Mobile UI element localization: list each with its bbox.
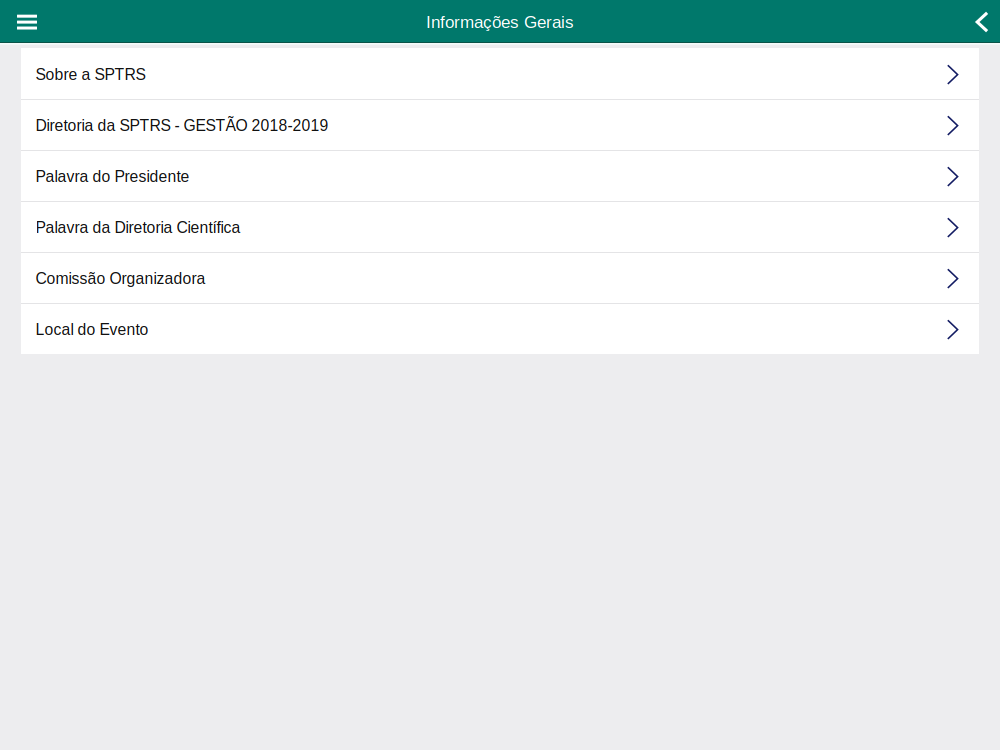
button[interactable]: Sobre a SPTRS [21, 48, 979, 99]
button[interactable]: Diretoria da SPTRS - GESTÃO 2018-2019 [21, 99, 979, 150]
button[interactable]: Back [962, 0, 1000, 42]
staticText: Palavra do Presidente [35, 168, 189, 185]
staticText: Informações Gerais [426, 12, 574, 32]
button[interactable]: Palavra do Presidente [21, 150, 979, 201]
button[interactable]: Local do Evento [21, 303, 979, 354]
staticText: Palavra da Diretoria Científica [35, 219, 240, 236]
staticText: Local do Evento [35, 321, 148, 338]
button[interactable]: Comissão Organizadora [21, 252, 979, 303]
staticText: Sobre a SPTRS [35, 66, 145, 83]
button[interactable]: Menu [6, 0, 48, 42]
staticText: Comissão Organizadora [35, 270, 205, 287]
button[interactable]: Palavra da Diretoria Científica [21, 201, 979, 252]
staticText: Diretoria da SPTRS - GESTÃO 2018-2019 [35, 117, 328, 134]
